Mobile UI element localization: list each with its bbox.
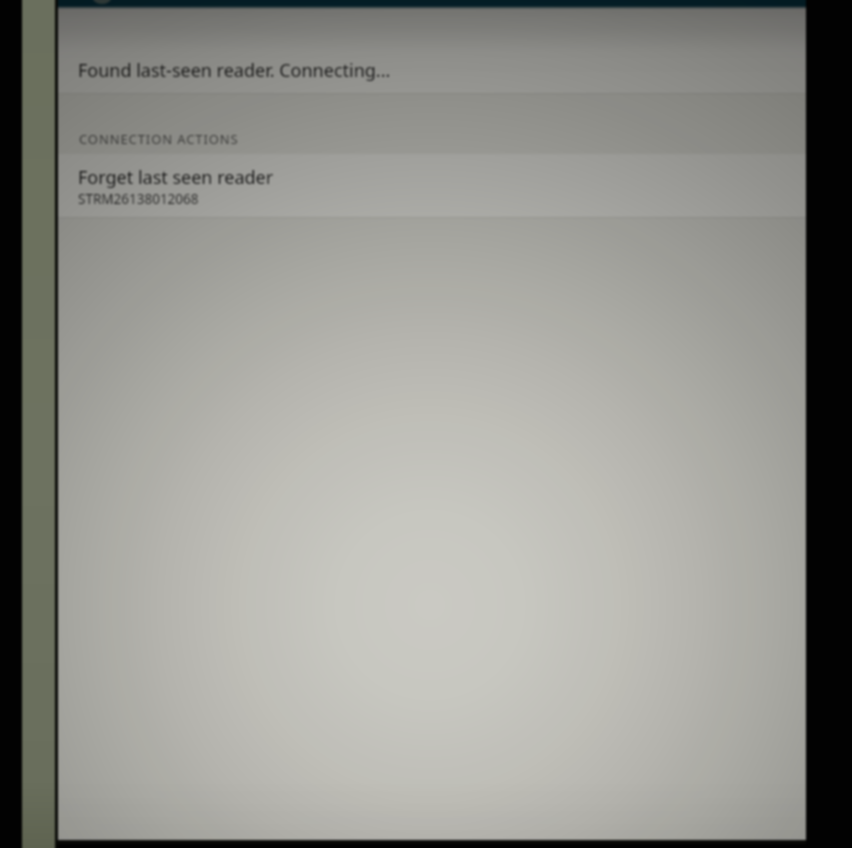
staticText: Found last-seen reader. Connecting...: [78, 58, 391, 83]
button[interactable]: [58, 154, 806, 217]
staticText: CONNECTION ACTIONS: [79, 130, 239, 148]
staticText: Forget last seen reader: [78, 165, 274, 190]
button[interactable]: Navigate up: [90, 0, 114, 4]
staticText: STRM26138012068: [78, 190, 199, 208]
